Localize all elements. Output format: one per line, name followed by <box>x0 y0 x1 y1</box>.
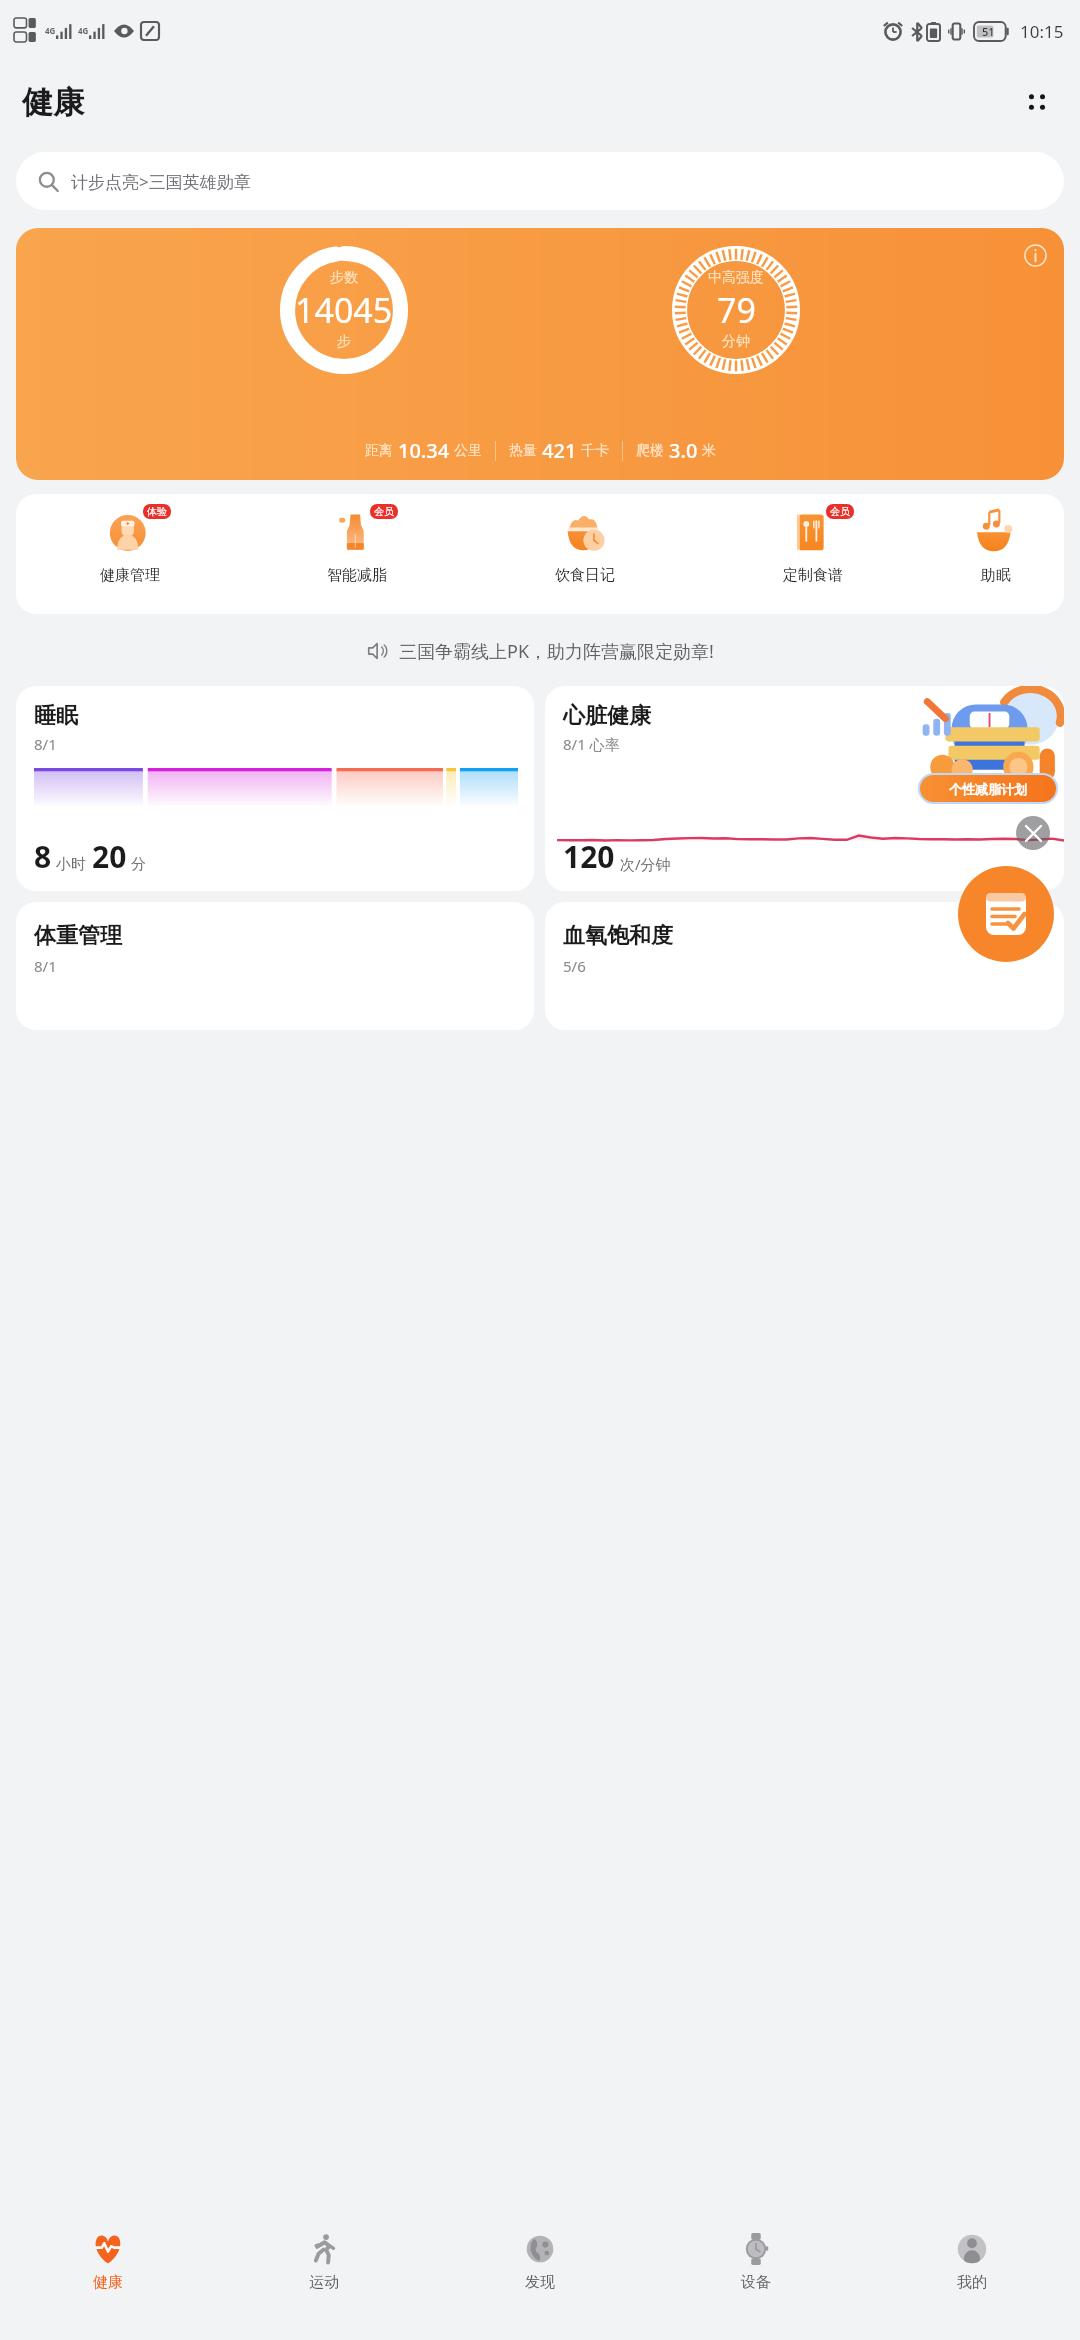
button[interactable]: 血氧饱和度 <box>545 902 1064 1030</box>
staticText: 心脏健康 <box>563 702 651 730</box>
staticText: 分 <box>131 855 146 874</box>
staticText: 助眠 <box>981 566 1011 585</box>
staticText: 我的 <box>957 2273 987 2292</box>
staticText: 中高强度 <box>708 269 764 287</box>
staticText: 20 <box>92 836 127 877</box>
button[interactable]: 个性减脂计划 <box>920 775 1056 802</box>
staticText: 10:15 <box>1020 20 1064 43</box>
staticText: 3.0 <box>669 437 698 464</box>
button[interactable]: Info <box>16 228 1064 480</box>
staticText: 次/分钟 <box>620 854 671 874</box>
button[interactable]: More options <box>1014 79 1060 125</box>
staticText: 8/1 <box>34 734 57 754</box>
button[interactable]: 睡眠 <box>16 686 534 891</box>
button[interactable]: 运动 <box>216 2218 432 2340</box>
staticText: 步 <box>337 333 351 351</box>
staticText: 健康 <box>22 83 84 122</box>
staticText: 热量 <box>509 442 537 460</box>
staticText: 体重管理 <box>34 922 122 950</box>
button[interactable]: 设备 <box>648 2218 864 2340</box>
staticText: 79 <box>717 287 756 333</box>
button[interactable]: 计步点亮>三国英雄勋章 <box>16 152 1064 210</box>
staticText: 4G <box>45 25 56 36</box>
staticText: 爬楼 <box>636 442 664 460</box>
staticText: 健康管理 <box>100 566 160 585</box>
staticText: 智能减脂 <box>327 566 387 585</box>
staticText: 421 <box>542 437 577 464</box>
button[interactable]: 健康 <box>0 2218 216 2340</box>
staticText: 10.34 <box>398 437 450 464</box>
staticText: 8/1 <box>34 956 57 976</box>
staticText: 健康 <box>93 2273 123 2292</box>
button[interactable]: 三国争霸线上PK，助力阵营赢限定勋章! <box>0 628 1080 674</box>
staticText: 8/1 心率 <box>563 734 620 754</box>
button[interactable]: 助眠 <box>927 494 1064 614</box>
staticText: 公里 <box>454 442 482 460</box>
staticText: 设备 <box>741 2273 771 2292</box>
staticText: 距离 <box>365 442 393 460</box>
staticText: 120 <box>563 836 615 877</box>
button[interactable]: 体验 <box>16 494 243 614</box>
staticText: 个性减脂计划 <box>949 781 1027 797</box>
staticText: 体验 <box>147 505 167 518</box>
staticText: 饮食日记 <box>555 566 615 585</box>
staticText: 14045 <box>295 287 393 333</box>
staticText: 三国争霸线上PK，助力阵营赢限定勋章! <box>399 639 714 664</box>
staticText: 4G <box>78 25 89 36</box>
button[interactable]: 会员 <box>243 494 471 614</box>
staticText: 米 <box>702 442 716 460</box>
button[interactable]: 我的 <box>864 2218 1080 2340</box>
button[interactable]: Info <box>1016 236 1054 274</box>
staticText: 分钟 <box>722 333 750 351</box>
staticText: 运动 <box>309 2273 339 2292</box>
button[interactable]: 饮食日记 <box>471 494 699 614</box>
button[interactable]: 会员 <box>699 494 927 614</box>
staticText: 51 <box>982 24 995 39</box>
button[interactable]: 体重管理 <box>16 902 534 1030</box>
button[interactable]: Close ad <box>1016 816 1050 850</box>
staticText: 血氧饱和度 <box>563 922 673 950</box>
staticText: 千卡 <box>581 442 609 460</box>
button[interactable]: Add record <box>958 866 1054 962</box>
button[interactable]: 心脏健康 <box>545 686 1064 891</box>
staticText: 8 <box>34 836 52 877</box>
staticText: 5/6 <box>563 956 586 976</box>
staticText: 计步点亮>三国英雄勋章 <box>71 170 251 193</box>
staticText: 发现 <box>525 2273 555 2292</box>
staticText: 小时 <box>56 855 86 874</box>
button[interactable]: 发现 <box>432 2218 648 2340</box>
staticText: 会员 <box>374 505 394 518</box>
staticText: 定制食谱 <box>783 566 843 585</box>
staticText: 步数 <box>330 269 358 287</box>
staticText: 睡眠 <box>34 702 78 730</box>
staticText: 会员 <box>830 505 850 518</box>
